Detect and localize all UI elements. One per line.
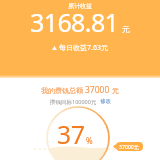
staticText: 37000 <box>85 84 110 96</box>
staticText: 累计收益 <box>68 2 92 10</box>
button[interactable]: 37000元 <box>113 142 143 151</box>
staticText: % <box>86 135 93 146</box>
staticText: 每日收益7.63元 <box>59 43 108 53</box>
staticText: 37 <box>57 118 86 151</box>
staticText: 修改 <box>100 98 111 105</box>
button[interactable]: 修改 <box>100 98 111 105</box>
staticText: 元 <box>110 86 119 96</box>
staticText: 元 <box>122 24 130 34</box>
staticText: 37000元 <box>119 143 140 150</box>
staticText: 攒钱目标100000元 <box>50 98 97 106</box>
staticText: 我的攒钱总额 <box>41 86 85 96</box>
staticText: 3168.81 <box>30 5 119 39</box>
